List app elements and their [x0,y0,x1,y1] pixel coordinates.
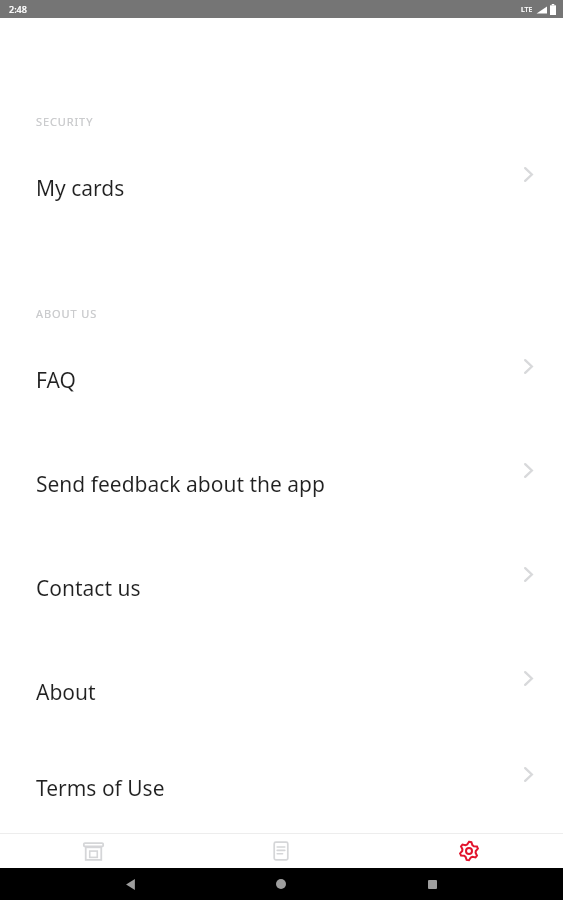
button[interactable]: Contact us [0,536,563,640]
staticText: FAQ [36,366,76,395]
button[interactable]: My cards [0,136,563,240]
button[interactable]: About [0,640,563,744]
button[interactable]: Terms of Use [0,744,563,833]
button[interactable]: Send feedback about the app [0,432,563,536]
staticText: About [36,678,96,707]
button[interactable]: Settings [375,834,563,868]
staticText: ABOUT US [36,306,98,321]
staticText: Send feedback about the app [36,470,325,499]
button[interactable]: Recents [412,868,452,900]
button[interactable]: Back [110,868,150,900]
staticText: My cards [36,174,125,203]
button[interactable]: Shop [0,834,187,868]
staticText: 2:48 [9,3,27,15]
button[interactable]: FAQ [0,328,563,432]
staticText: SECURITY [36,114,94,129]
button[interactable]: Orders [187,834,375,868]
button[interactable]: Home [261,868,301,900]
staticText: Contact us [36,574,141,603]
staticText: LTE [521,5,533,15]
staticText: Terms of Use [36,774,165,803]
